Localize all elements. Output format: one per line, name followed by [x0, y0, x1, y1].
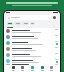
button[interactable] [4, 58, 60, 64]
button[interactable]: Settings [39, 65, 45, 72]
button[interactable] [14, 22, 21, 25]
button[interactable]: Calls [19, 65, 25, 72]
other: Menu [8, 17, 10, 19]
button[interactable] [7, 22, 13, 25]
button[interactable] [30, 22, 35, 25]
button[interactable]: Status [29, 65, 35, 72]
button[interactable] [4, 34, 60, 40]
button[interactable] [4, 28, 60, 34]
button[interactable]: Menu [7, 15, 57, 20]
button[interactable] [4, 46, 60, 52]
button[interactable] [4, 40, 60, 46]
button[interactable] [22, 22, 29, 25]
button[interactable]: Chats [10, 65, 16, 72]
button[interactable] [4, 64, 60, 65]
button[interactable]: Profile [48, 65, 54, 72]
button[interactable] [4, 52, 60, 58]
